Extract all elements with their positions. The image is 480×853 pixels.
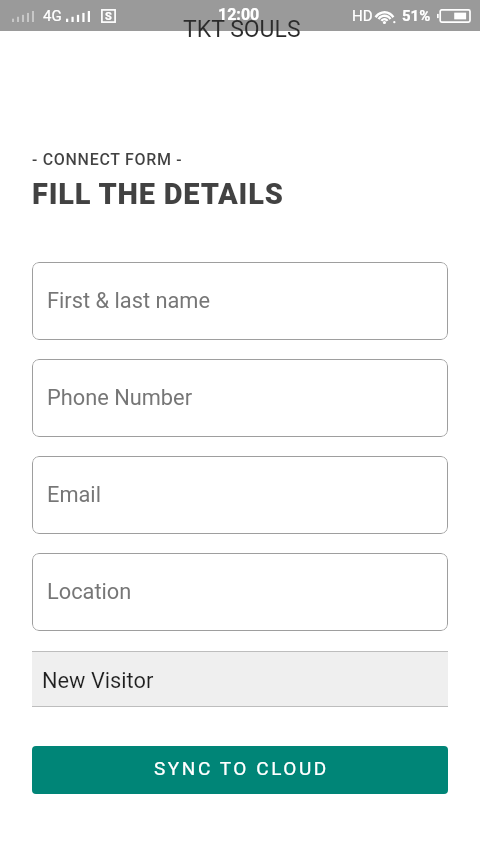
staticText: FILL THE DETAILS <box>32 177 284 211</box>
button[interactable]: Phone Number <box>32 359 448 437</box>
staticText: First & last name <box>47 288 210 314</box>
button[interactable]: Email <box>32 456 448 534</box>
staticText: SYNC TO CLOUD <box>154 757 329 779</box>
staticText: - CONNECT FORM - <box>32 150 183 169</box>
staticText: New Visitor <box>42 668 154 694</box>
staticText: TKT SOULS <box>183 16 301 43</box>
staticText: HD <box>352 7 373 25</box>
button[interactable]: Location <box>32 553 448 631</box>
staticText: 12:00 <box>218 5 260 24</box>
button[interactable]: New Visitor <box>32 651 448 707</box>
button[interactable]: First & last name <box>32 262 448 340</box>
staticText: Email <box>47 482 101 508</box>
staticText: S <box>105 10 112 23</box>
staticText: Location <box>47 579 132 605</box>
button[interactable]: SYNC TO CLOUD <box>32 746 448 794</box>
staticText: 51% <box>402 7 431 25</box>
staticText: Phone Number <box>47 385 193 411</box>
staticText: 4G <box>43 7 62 25</box>
